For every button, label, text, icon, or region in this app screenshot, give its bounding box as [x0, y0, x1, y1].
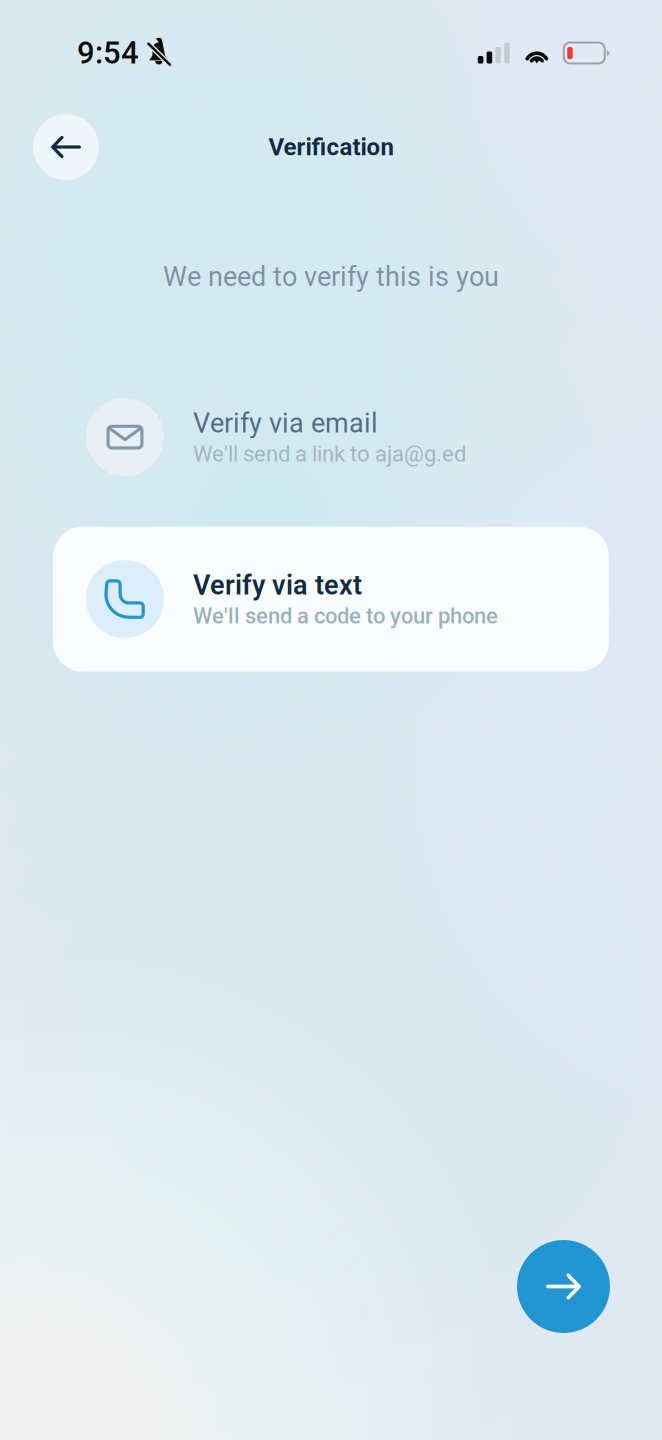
staticText: 9:54 — [77, 35, 139, 71]
staticText: Verify via email — [193, 407, 378, 439]
button[interactable]: Verify via email — [53, 365, 609, 510]
staticText: We'll send a link to aja@g.ed — [193, 441, 466, 467]
button[interactable]: Back — [33, 114, 99, 180]
staticText: Verify via text — [193, 569, 362, 601]
staticText: Verification — [268, 133, 393, 161]
button[interactable]: Continue — [517, 1240, 610, 1333]
staticText: We need to verify this is you — [163, 261, 499, 293]
button[interactable]: Verify via text — [53, 527, 609, 672]
staticText: We'll send a code to your phone — [193, 603, 498, 629]
